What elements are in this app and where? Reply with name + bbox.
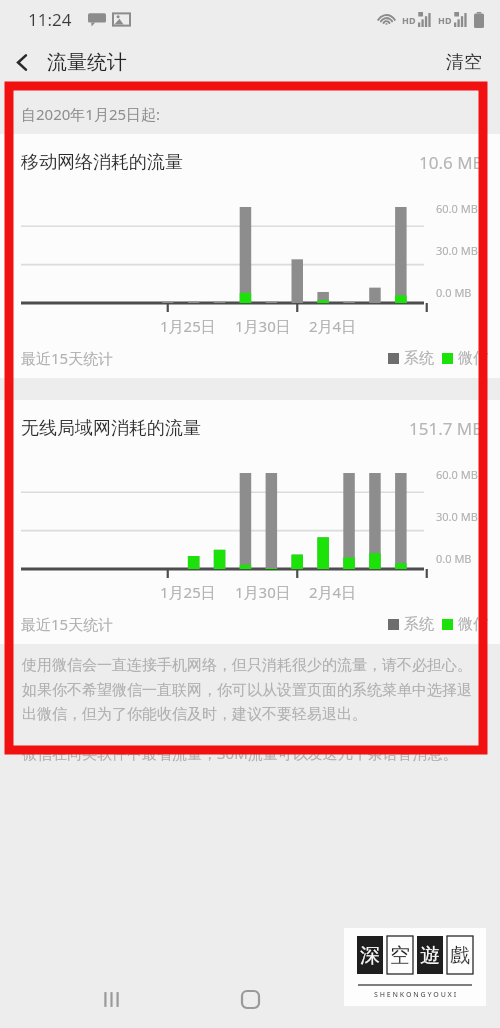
staticText: 微信 [458,615,488,634]
button[interactable]: Back [0,40,44,84]
staticText: 0.0 MB [436,285,472,300]
staticText: 1月30日 [235,316,291,336]
staticText: 戲 [450,943,470,968]
staticText: 系统 [404,615,434,634]
staticText: 流量统计 [47,50,127,75]
staticText: 11:24 [28,8,72,31]
staticText: 自2020年1月25日起: [21,104,161,124]
staticText: 无线局域网消耗的流量 [21,417,201,440]
staticText: 60.0 MB [436,467,478,482]
staticText: 移动网络消耗的流量 [21,151,183,174]
staticText: 30.0 MB [436,509,478,524]
staticText: 1月25日 [160,582,216,602]
button[interactable]: Recents [88,976,134,1022]
staticText: 10.6 MB [419,151,484,174]
button[interactable]: 清空 [428,41,500,84]
staticText: 清空 [446,51,482,74]
button[interactable]: 移动网络消耗的流量 [0,134,500,378]
staticText: 遊 [420,943,440,968]
staticText: 微信 [458,349,488,368]
button[interactable]: Home [227,976,273,1022]
button[interactable]: 无线局域网消耗的流量 [0,400,500,644]
staticText: 0.0 MB [436,551,472,566]
staticText: 最近15天统计 [21,614,114,634]
staticText: HD [402,14,416,26]
staticText: 最近15天统计 [21,348,114,368]
staticText: 1月30日 [235,582,291,602]
staticText: 微信在同类软件中最省流量，30M流量可以发送几千条语音消息。 [22,743,458,763]
staticText: HD [438,14,452,26]
staticText: S H E N K O N G Y O U X I [374,990,457,1000]
staticText: 30.0 MB [436,243,478,258]
staticText: 深 [360,943,380,968]
staticText: 60.0 MB [436,201,478,216]
staticText: 2月4日 [309,582,357,602]
staticText: 系统 [404,349,434,368]
staticText: 151.7 MB [409,417,484,440]
staticText: 空 [390,943,410,968]
staticText: 2月4日 [309,316,357,336]
staticText: 使用微信会一直连接手机网络，但只消耗很少的流量，请不必担心。如果你不希望微信一直… [22,656,478,723]
staticText: 1月25日 [160,316,216,336]
